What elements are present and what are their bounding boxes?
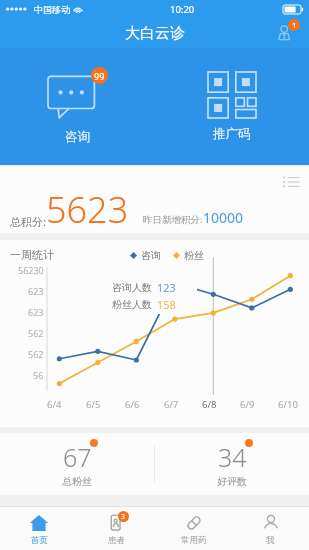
staticText: 56230 xyxy=(18,264,44,276)
staticText: 首页 xyxy=(31,535,48,546)
staticText: 好评数 xyxy=(217,475,247,488)
button[interactable]: 首页 xyxy=(0,507,78,550)
button[interactable]: Doctor profile xyxy=(271,18,301,48)
staticText: 623 xyxy=(28,306,44,318)
staticText: 患者 xyxy=(108,535,125,546)
staticText: 总粉丝 xyxy=(62,475,92,488)
staticText: 常用药 xyxy=(181,535,207,546)
staticText: 咨询人数 xyxy=(112,281,152,294)
button[interactable]: 3 xyxy=(78,507,155,550)
staticText: 6/10 xyxy=(278,398,303,411)
staticText: 一周统计 xyxy=(10,248,54,262)
staticText: 67 xyxy=(63,440,92,474)
staticText: 6/5 xyxy=(86,398,125,411)
button[interactable]: Points detail list xyxy=(281,172,301,192)
staticText: 3 xyxy=(121,512,126,522)
staticText: 158 xyxy=(157,297,176,312)
staticText: 1 xyxy=(292,20,297,30)
staticText: 推广码 xyxy=(213,126,251,142)
staticText: 5623 xyxy=(46,185,129,234)
staticText: 123 xyxy=(157,280,176,295)
staticText: 中国移动 xyxy=(34,4,70,15)
staticText: 34 xyxy=(218,440,247,474)
staticText: 623 xyxy=(28,285,44,297)
staticText: 6/9 xyxy=(240,398,278,411)
button[interactable]: 常用药 xyxy=(155,507,232,550)
staticText: 总积分: xyxy=(10,214,46,229)
button[interactable]: 34 xyxy=(155,433,309,495)
staticText: 6/6 xyxy=(125,398,164,411)
staticText: 10000 xyxy=(203,208,244,227)
staticText: 6/8 xyxy=(202,398,240,411)
button[interactable]: 推广码 xyxy=(154,48,309,165)
staticText: 10:20 xyxy=(170,3,195,16)
button[interactable]: 67 xyxy=(0,433,154,495)
staticText: 大白云诊 xyxy=(125,24,185,43)
button[interactable]: 我 xyxy=(232,507,309,550)
staticText: 咨询 xyxy=(141,249,161,262)
staticText: 6/7 xyxy=(164,398,202,411)
button[interactable]: 99 xyxy=(0,48,154,165)
staticText: 6/4 xyxy=(47,398,86,411)
staticText: 我 xyxy=(266,535,275,546)
staticText: 粉丝人数 xyxy=(112,298,152,311)
staticText: 99 xyxy=(94,70,105,82)
staticText: 粉丝 xyxy=(184,249,204,262)
staticText: 56 xyxy=(33,369,44,381)
staticText: 562 xyxy=(28,348,44,360)
staticText: 562 xyxy=(28,327,44,339)
staticText: 昨日新增积分: xyxy=(143,213,203,226)
staticText: 咨询 xyxy=(65,129,90,145)
